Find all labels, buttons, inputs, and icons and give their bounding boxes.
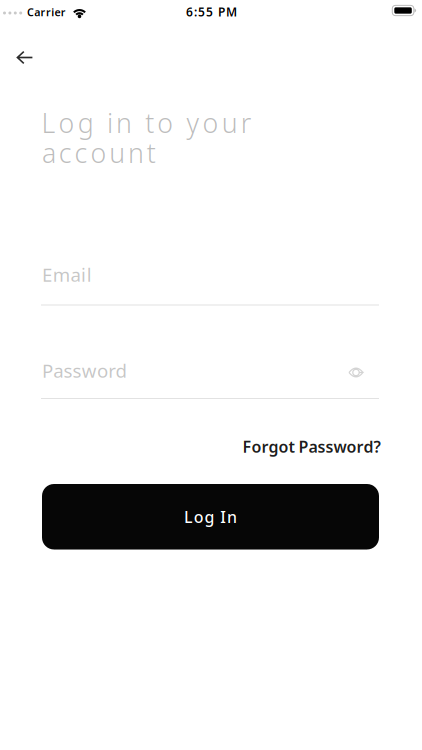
staticText: Log in to your xyxy=(41,105,262,140)
button[interactable]: Log In xyxy=(42,484,379,549)
button[interactable]: Back xyxy=(3,41,47,73)
staticText: Password xyxy=(42,358,132,383)
staticText: Carrier xyxy=(27,5,66,19)
staticText: Email xyxy=(42,262,97,287)
staticText: 6:55 PM xyxy=(186,4,237,20)
button[interactable]: Show password xyxy=(344,361,368,383)
button[interactable]: Forgot Password? xyxy=(46,436,384,457)
staticText: Forgot Password? xyxy=(242,436,384,457)
staticText: Log In xyxy=(184,506,237,527)
staticText: account xyxy=(42,135,166,170)
